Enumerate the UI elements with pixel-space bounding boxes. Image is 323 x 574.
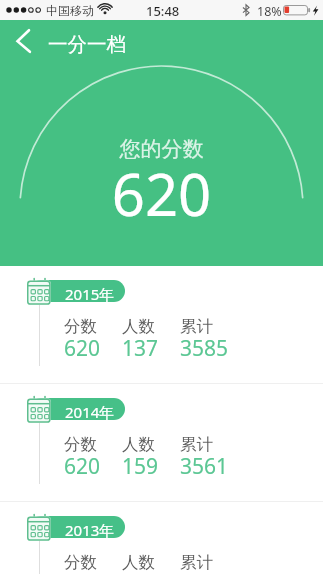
- staticText: 2013年: [65, 520, 115, 540]
- staticText: 2015年: [65, 284, 115, 304]
- staticText: 620: [64, 452, 101, 481]
- staticText: 620: [0, 154, 323, 233]
- staticText: 3561: [180, 452, 229, 481]
- staticText: 人数: [122, 316, 155, 337]
- button[interactable]: 2015年: [0, 266, 323, 383]
- staticText: 15:48: [146, 2, 180, 20]
- staticText: 您的分数: [0, 136, 323, 162]
- button[interactable]: Back: [3, 24, 39, 56]
- staticText: 人数: [122, 434, 155, 455]
- staticText: 18%: [257, 3, 282, 20]
- staticText: 累计: [180, 316, 213, 337]
- staticText: 3585: [180, 334, 229, 363]
- staticText: 一分一档: [48, 32, 126, 57]
- staticText: 159: [122, 452, 159, 481]
- staticText: 分数: [64, 316, 97, 337]
- staticText: 620: [64, 334, 101, 363]
- staticText: 2014年: [65, 402, 115, 422]
- staticText: 累计: [180, 552, 213, 573]
- staticText: 150: [122, 570, 159, 574]
- staticText: 分数: [64, 434, 97, 455]
- staticText: 分数: [64, 552, 97, 573]
- staticText: 137: [122, 334, 159, 363]
- staticText: 累计: [180, 434, 213, 455]
- staticText: 中国移动: [46, 3, 94, 18]
- staticText: 人数: [122, 552, 155, 573]
- button[interactable]: 2014年: [0, 384, 323, 501]
- button[interactable]: 2013年: [0, 502, 323, 574]
